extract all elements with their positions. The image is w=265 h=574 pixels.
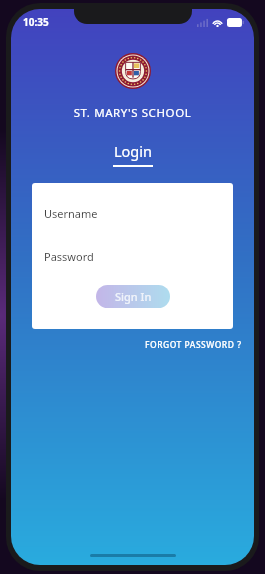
other: School logo <box>115 53 151 89</box>
staticText: ST. MARY'S SCHOOL <box>11 105 254 121</box>
staticText: 10:35 <box>23 15 49 29</box>
button[interactable]: Password <box>32 246 233 267</box>
button[interactable]: Username <box>32 203 233 224</box>
staticText: Sign In <box>115 289 152 304</box>
button[interactable]: Login <box>103 139 163 169</box>
button[interactable]: FORGOT PASSWORD ? <box>145 337 254 353</box>
button[interactable]: Sign In <box>96 285 170 308</box>
staticText: Login <box>114 141 152 161</box>
